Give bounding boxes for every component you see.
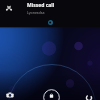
button[interactable]: Unlock xyxy=(43,89,60,100)
button[interactable]: Missed call xyxy=(0,2,100,26)
button[interactable]: Phone xyxy=(85,93,93,100)
staticText: Missed call xyxy=(27,2,55,9)
button[interactable]: More notifications xyxy=(48,20,53,25)
staticText: Lyonesdsa xyxy=(27,10,45,15)
button[interactable]: Camera xyxy=(6,91,14,99)
